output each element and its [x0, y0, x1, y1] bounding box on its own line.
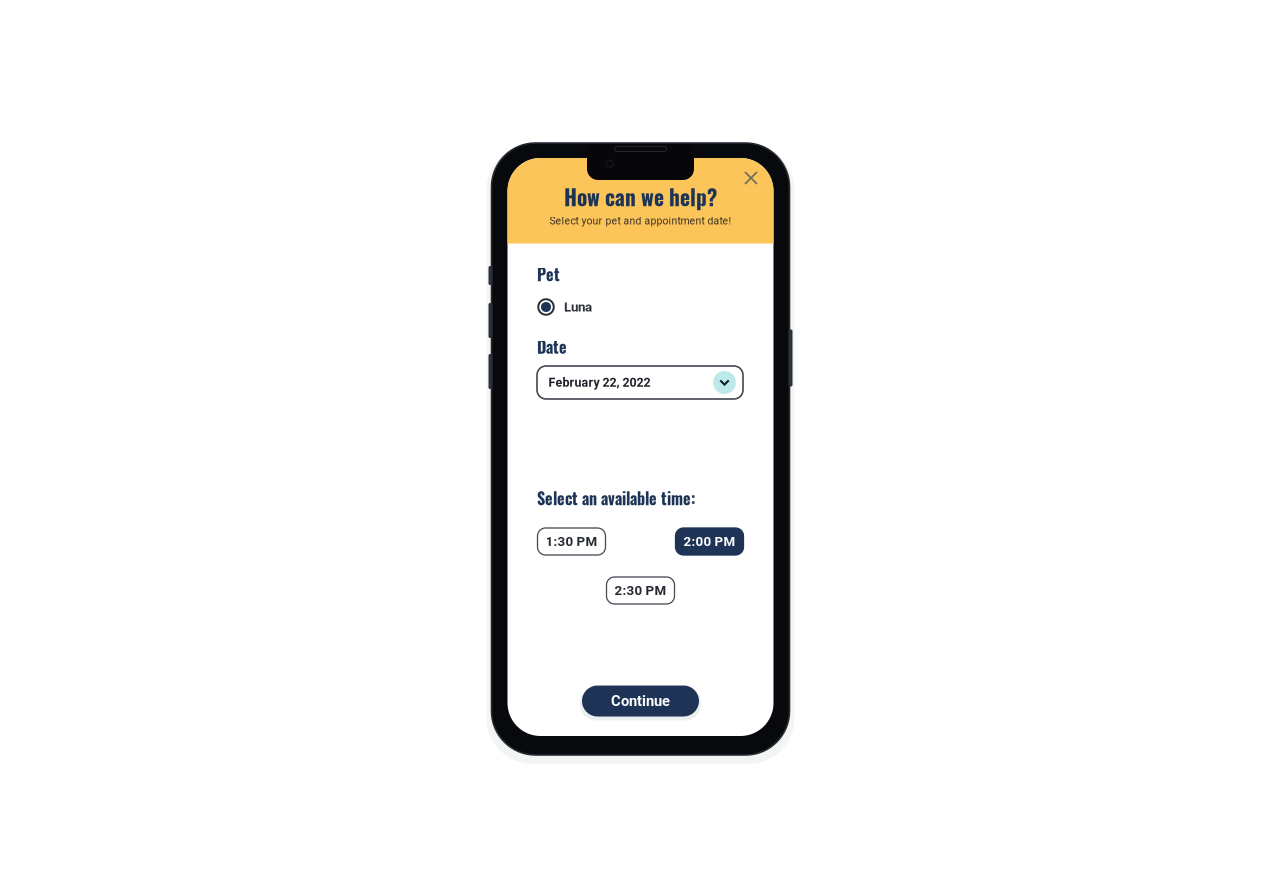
staticText: Select your pet and appointment date!: [549, 215, 731, 227]
button[interactable]: Luna: [537, 294, 607, 320]
staticText: Select an available time:: [537, 486, 695, 510]
staticText: How can we help?: [564, 181, 717, 212]
staticText: Luna: [564, 299, 592, 315]
button[interactable]: 1:30 PM: [537, 528, 605, 555]
staticText: February 22, 2022: [548, 375, 650, 390]
staticText: 2:00 PM: [683, 534, 735, 549]
staticText: Pet: [537, 262, 560, 286]
staticText: Date: [537, 335, 567, 358]
button[interactable]: Close: [736, 163, 766, 193]
button[interactable]: 2:00 PM: [675, 528, 743, 555]
button[interactable]: Continue: [582, 685, 699, 716]
button[interactable]: February 22, 2022: [537, 366, 743, 399]
button[interactable]: 2:30 PM: [606, 577, 674, 604]
staticText: 1:30 PM: [545, 534, 597, 549]
staticText: Continue: [611, 692, 670, 710]
staticText: 2:30 PM: [614, 583, 666, 598]
